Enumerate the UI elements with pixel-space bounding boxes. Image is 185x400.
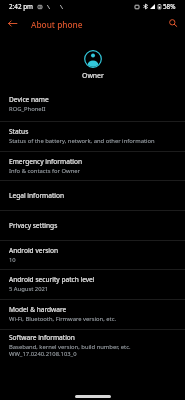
staticText: Legal information xyxy=(9,191,65,200)
staticText: About phone xyxy=(31,19,83,30)
staticText: ROG_PhoneII xyxy=(9,105,46,113)
button[interactable]: Software information xyxy=(0,330,185,366)
button[interactable]: Legal information xyxy=(0,181,185,211)
staticText: Device name xyxy=(9,95,49,104)
staticText: Emergency information xyxy=(9,157,83,166)
staticText: Android security patch level xyxy=(9,275,95,284)
staticText: Model & hardware xyxy=(9,305,67,314)
staticText: 5 August 2021 xyxy=(9,285,49,293)
staticText: Info & contacts for Owner xyxy=(9,167,80,175)
button[interactable]: Search xyxy=(162,13,184,35)
staticText: 2:42 pm xyxy=(9,2,33,11)
button[interactable]: Privacy settings xyxy=(0,211,185,241)
staticText: Status xyxy=(9,127,29,136)
button[interactable]: Android version xyxy=(0,241,185,270)
button[interactable]: Device name xyxy=(0,90,185,122)
staticText: 10 xyxy=(9,256,16,264)
staticText: Android version xyxy=(9,246,59,255)
button[interactable]: Android security patch level xyxy=(0,270,185,300)
staticText: 58% xyxy=(163,2,176,11)
staticText: Software information xyxy=(9,333,75,342)
button[interactable]: Status xyxy=(0,122,185,152)
staticText: Status of the battery, network, and othe… xyxy=(9,137,155,145)
button[interactable]: Back xyxy=(0,13,25,35)
staticText: Owner xyxy=(82,71,104,80)
staticText: Baseband, kernel version, build number, … xyxy=(9,343,131,351)
staticText: Wi-Fi, Bluetooth, Firmware version, etc. xyxy=(9,315,117,323)
staticText: Privacy settings xyxy=(9,221,58,230)
staticText: WW_17.0240.2108.103_0 xyxy=(9,350,77,358)
button[interactable]: Model & hardware xyxy=(0,300,185,330)
button[interactable]: Emergency information xyxy=(0,152,185,181)
